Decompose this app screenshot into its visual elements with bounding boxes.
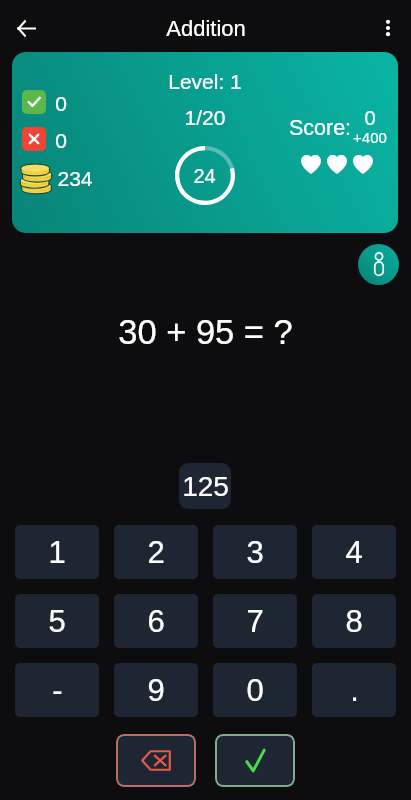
staticText: 0: [51, 129, 71, 152]
button[interactable]: 6: [114, 594, 198, 648]
button[interactable]: 4: [312, 525, 396, 579]
button[interactable]: Submit: [215, 734, 295, 787]
button[interactable]: 7: [213, 594, 297, 648]
staticText: 234: [55, 167, 95, 190]
staticText: Addition: [166, 16, 246, 41]
staticText: 30 + 95 = ?: [0, 313, 411, 352]
staticText: 9: [147, 673, 165, 708]
staticText: Level: 1: [12, 70, 398, 93]
button[interactable]: .: [312, 663, 396, 717]
button[interactable]: 1: [15, 525, 99, 579]
staticText: 3: [246, 535, 264, 570]
staticText: 1/20: [12, 106, 398, 129]
staticText: Score:: [287, 116, 353, 140]
staticText: 1: [48, 535, 66, 570]
staticText: 7: [246, 604, 264, 639]
button[interactable]: -: [15, 663, 99, 717]
button[interactable]: Info: [358, 244, 399, 285]
button[interactable]: 0: [213, 663, 297, 717]
staticText: 0: [51, 92, 71, 115]
staticText: 0: [358, 107, 382, 129]
button[interactable]: 3: [213, 525, 297, 579]
button[interactable]: Back: [8, 10, 44, 46]
staticText: 2: [147, 535, 165, 570]
staticText: 24: [193, 165, 216, 187]
staticText: 0: [246, 673, 264, 708]
staticText: -: [52, 673, 63, 708]
staticText: +400: [342, 129, 398, 146]
staticText: 8: [345, 604, 363, 639]
staticText: 4: [345, 535, 363, 570]
staticText: .: [350, 673, 359, 708]
staticText: 6: [147, 604, 165, 639]
button[interactable]: 5: [15, 594, 99, 648]
staticText: 125: [182, 471, 229, 502]
button[interactable]: More options: [370, 10, 406, 46]
button[interactable]: 9: [114, 663, 198, 717]
button[interactable]: 8: [312, 594, 396, 648]
button[interactable]: Delete: [116, 734, 196, 787]
button[interactable]: 2: [114, 525, 198, 579]
staticText: 5: [48, 604, 66, 639]
